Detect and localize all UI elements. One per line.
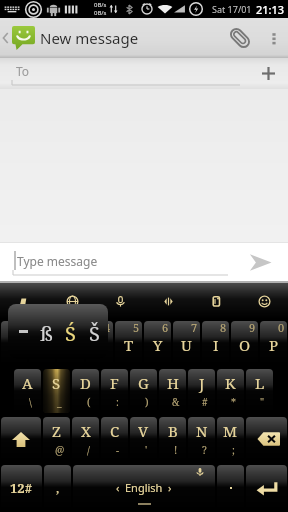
staticText: D [80, 373, 91, 393]
staticText: B [168, 421, 178, 441]
staticText: ) [145, 395, 149, 409]
button[interactable]: Z [43, 417, 70, 461]
staticText: 6 [162, 321, 169, 335]
staticText: New message [40, 28, 139, 48]
button[interactable]: L [246, 369, 273, 413]
button[interactable]: N [188, 417, 215, 461]
button[interactable]: V [130, 417, 157, 461]
staticText: 21:13 [256, 2, 285, 17]
button[interactable]: Clipboard [192, 283, 240, 319]
staticText: › [168, 480, 172, 495]
staticText: 9 [249, 321, 256, 335]
staticText: ' [145, 443, 148, 457]
button[interactable]: 2 [29, 321, 55, 365]
staticText: Z [52, 421, 61, 441]
button[interactable]: 9 [231, 321, 258, 365]
button[interactable]: Emoji [240, 283, 288, 319]
staticText: 1 [18, 321, 25, 335]
staticText: To [16, 63, 30, 79]
button[interactable]: Type message [0, 242, 232, 283]
button[interactable]: G [130, 369, 157, 413]
staticText: S [52, 373, 61, 393]
staticText: 12# [10, 479, 33, 497]
staticText: 4 [104, 321, 111, 335]
button[interactable]: Backspace [246, 417, 287, 461]
button[interactable]: 3 [57, 321, 84, 365]
button[interactable]: D [72, 369, 99, 413]
staticText: P [269, 335, 279, 355]
button[interactable]: A [14, 369, 41, 413]
staticText: # [202, 395, 208, 409]
button[interactable]: 5 [115, 321, 142, 365]
staticText: ! [174, 443, 178, 457]
button[interactable]: 8 [202, 321, 229, 365]
staticText: ; [232, 443, 235, 457]
button[interactable]: C [101, 417, 128, 461]
button[interactable]: Language [48, 283, 96, 319]
button[interactable]: 7 [173, 321, 200, 365]
button[interactable]: Add recipient [248, 58, 288, 89]
button[interactable]: K [217, 369, 244, 413]
staticText: V [138, 421, 149, 441]
button[interactable]: B [159, 417, 186, 461]
button[interactable]: H [159, 369, 186, 413]
button[interactable]: 12# [1, 465, 42, 510]
staticText: & [172, 395, 180, 409]
button[interactable]: Attach [220, 18, 260, 58]
staticText: 2 [46, 321, 53, 335]
button[interactable]: F [101, 369, 128, 413]
button[interactable]: 1 [1, 321, 27, 365]
staticText: - [116, 443, 120, 457]
staticText: T [124, 335, 134, 355]
staticText: 7 [191, 321, 198, 335]
staticText: 0B/s [94, 9, 107, 17]
staticText: 0 [278, 321, 285, 335]
staticText: G [138, 373, 149, 393]
button[interactable]: 0 [260, 321, 287, 365]
staticText: I [213, 335, 219, 355]
button[interactable]: J [188, 369, 215, 413]
button[interactable]: More options [260, 24, 288, 52]
button[interactable]: Send [232, 242, 288, 283]
button[interactable]: Voice input [96, 283, 144, 319]
staticText: M [223, 421, 238, 441]
staticText: W [34, 335, 50, 355]
button[interactable]: M [217, 417, 244, 461]
button[interactable]: Settings [0, 283, 48, 319]
button[interactable] [217, 465, 244, 510]
staticText: Š [89, 320, 100, 347]
button[interactable]: Space [73, 465, 215, 510]
button[interactable]: Shift [1, 417, 41, 461]
staticText: Y [153, 335, 163, 355]
staticText: E [66, 335, 76, 355]
staticText: , [56, 479, 60, 497]
staticText: 8 [220, 321, 227, 335]
button[interactable]: To [0, 58, 248, 89]
staticText: ‹ [116, 480, 120, 495]
staticText: _ [57, 395, 62, 409]
button[interactable]: 6 [144, 321, 171, 365]
button[interactable]: X [72, 417, 99, 461]
staticText: H [167, 373, 179, 393]
staticText: ß [40, 320, 53, 347]
staticText: 0B/s [94, 1, 107, 9]
staticText: N [196, 421, 208, 441]
button[interactable]: , [44, 465, 71, 510]
button[interactable]: 4 [86, 321, 113, 365]
staticText: Type message [17, 253, 98, 269]
staticText: F [110, 373, 119, 393]
staticText: English [125, 480, 163, 495]
button[interactable]: S [43, 369, 70, 413]
staticText: ? [202, 443, 207, 457]
staticText: : [116, 395, 119, 409]
staticText: " [260, 395, 265, 409]
staticText: K [225, 373, 236, 393]
button[interactable]: Enter [246, 465, 287, 510]
staticText: L [255, 373, 265, 393]
staticText: 5 [133, 321, 140, 335]
button[interactable]: Move cursor [144, 283, 192, 319]
button[interactable]: Navigate up [0, 18, 36, 58]
staticText: Ś [65, 320, 76, 347]
staticText: * [231, 395, 236, 409]
